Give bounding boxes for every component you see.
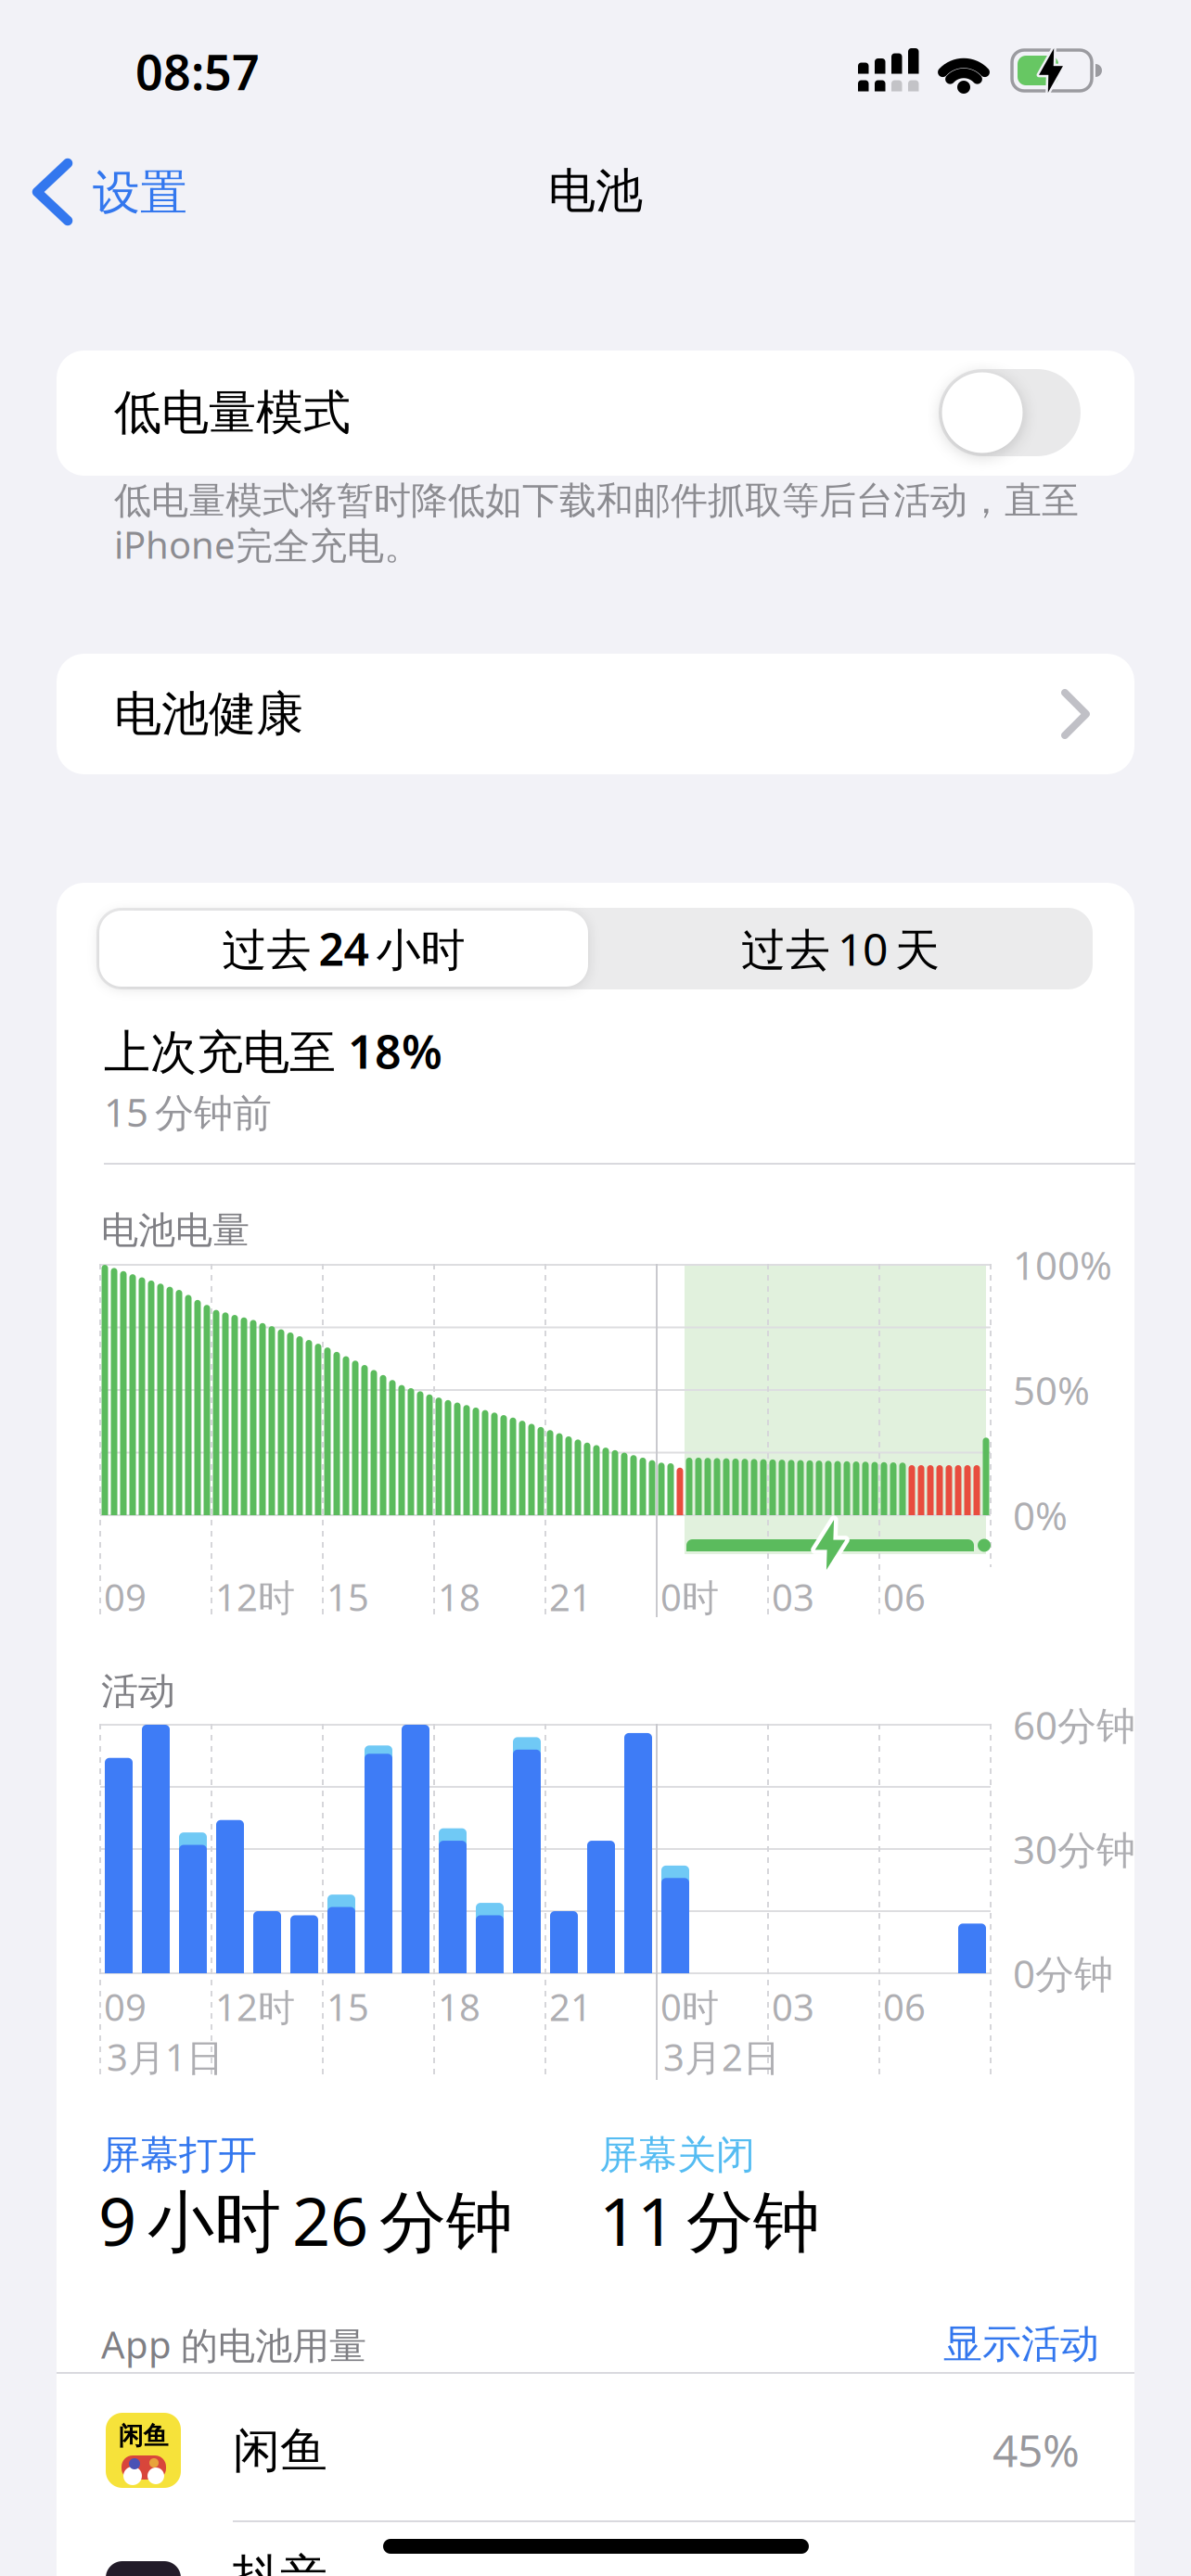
staticText: 03 — [772, 1981, 814, 2032]
staticText: 抖音 — [233, 2547, 327, 2576]
staticText: 0% — [1013, 1489, 1068, 1542]
button[interactable]: 电池健康 — [57, 654, 1134, 774]
staticText: 0时 — [660, 1981, 719, 2032]
button[interactable]: 过去 10 天 — [596, 911, 1085, 987]
staticText: 06 — [883, 1572, 926, 1622]
staticText: 60分钟 — [1013, 1698, 1135, 1751]
staticText: 设置 — [93, 163, 187, 223]
staticText: 06 — [883, 1981, 926, 2032]
staticText: 上次充电至 18% — [104, 1019, 442, 1082]
staticText: 21 — [549, 1572, 592, 1622]
staticText: 过去 24 小时 — [222, 918, 465, 979]
button[interactable]: 过去 24 小时 — [99, 911, 588, 987]
staticText: 50% — [1013, 1363, 1090, 1417]
staticText: 18 — [438, 1572, 480, 1622]
staticText: 电池 — [548, 161, 643, 221]
staticText: 08:57 — [135, 39, 260, 104]
staticText: 12时 — [215, 1981, 295, 2032]
button[interactable]: 低电量模式 — [939, 369, 1081, 456]
staticText: 低电量模式将暂时降低如下载和邮件抓取等后台活动，直至 — [114, 477, 1079, 524]
staticText: 屏幕打开 — [101, 2130, 257, 2179]
staticText: 12时 — [215, 1572, 295, 1622]
button[interactable]: 显示活动 — [821, 2319, 1099, 2369]
staticText: 45% — [992, 2420, 1080, 2480]
button[interactable]: 抖音 — [57, 2522, 1134, 2576]
staticText: 03 — [772, 1572, 814, 1622]
staticText: 低电量模式 — [114, 383, 351, 442]
staticText: 15 分钟前 — [104, 1085, 272, 1138]
staticText: 9 小时 26 分钟 — [98, 2174, 513, 2265]
staticText: 显示活动 — [943, 2320, 1099, 2369]
staticText: 活动 — [101, 1668, 175, 1715]
staticText: 电池健康 — [114, 684, 303, 744]
staticText: 15 — [327, 1981, 369, 2032]
staticText: 闲鱼 — [118, 2420, 168, 2452]
staticText: App 的电池用量 — [101, 2319, 366, 2369]
staticText: 过去 10 天 — [741, 918, 940, 979]
staticText: 30分钟 — [1013, 1822, 1135, 1876]
staticText: 0分钟 — [1013, 1947, 1113, 2000]
staticText: 闲鱼 — [233, 2421, 327, 2481]
staticText: 100% — [1013, 1238, 1112, 1291]
button[interactable]: 返回设置 — [28, 158, 223, 228]
staticText: 18 — [438, 1981, 480, 2032]
staticText: 09 — [104, 1572, 147, 1622]
staticText: 电池电量 — [101, 1207, 250, 1254]
staticText: iPhone完全充电。 — [114, 519, 421, 570]
staticText: 屏幕关闭 — [599, 2130, 755, 2179]
staticText: 0时 — [660, 1572, 719, 1622]
button[interactable]: 闲鱼 — [57, 2372, 1134, 2520]
staticText: 21 — [549, 1981, 592, 2032]
staticText: 15 — [327, 1572, 369, 1622]
staticText: 3月1日 — [107, 2031, 224, 2082]
staticText: 3月2日 — [663, 2031, 780, 2082]
staticText: 11 分钟 — [599, 2174, 820, 2265]
staticText: 09 — [104, 1981, 147, 2032]
